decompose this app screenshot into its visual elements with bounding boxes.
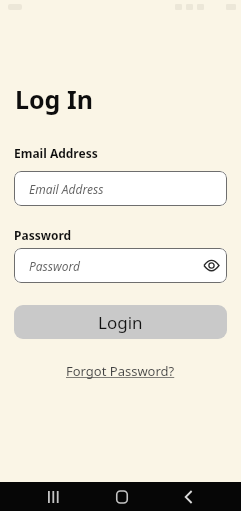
button[interactable]	[39, 482, 68, 511]
staticText: Log In	[15, 82, 93, 116]
button[interactable]: Forgot Password?	[66, 362, 175, 380]
staticText: Password	[29, 258, 80, 274]
button[interactable]: Login	[14, 305, 227, 339]
staticText: Login	[98, 311, 143, 334]
staticText: Email Address	[29, 181, 104, 197]
button[interactable]: Password	[14, 248, 227, 283]
button[interactable]	[107, 482, 136, 511]
staticText: Email Address	[14, 145, 98, 161]
button[interactable]	[174, 482, 203, 511]
button[interactable]: Email Address	[14, 171, 227, 206]
staticText: Password	[14, 227, 72, 243]
